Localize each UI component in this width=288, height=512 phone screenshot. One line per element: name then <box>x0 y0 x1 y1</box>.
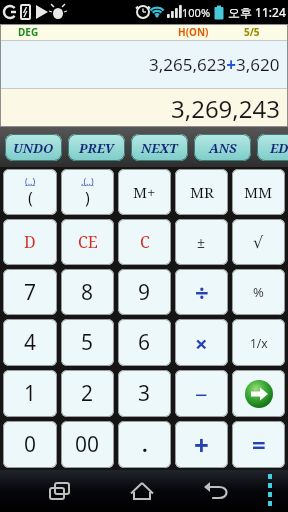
staticText: − <box>195 379 208 409</box>
staticText: + <box>194 427 209 462</box>
button[interactable]: M+ <box>118 169 171 215</box>
staticText: ( <box>28 187 33 209</box>
staticText: 3,265,623+3,620 <box>149 53 280 76</box>
button[interactable]: 0 <box>3 421 57 468</box>
staticText: (..) <box>25 175 36 187</box>
button[interactable]: = <box>232 421 285 468</box>
staticText: 00 <box>75 430 100 459</box>
staticText: 2 <box>81 379 94 408</box>
button[interactable]: 00 <box>61 421 114 468</box>
staticText: 3 <box>138 379 151 408</box>
staticText: 1/x <box>250 335 268 351</box>
staticText: % <box>253 283 264 301</box>
staticText: PREV <box>79 139 114 157</box>
staticText: M+ <box>133 182 156 202</box>
button[interactable]: 8 <box>61 269 114 315</box>
button[interactable]: 3 <box>118 370 171 417</box>
staticText: H(ON) <box>178 25 209 39</box>
button[interactable]: √ <box>232 219 285 265</box>
staticText: MM <box>244 182 273 202</box>
button[interactable]: ANS <box>194 134 251 161</box>
button[interactable] <box>0 470 288 512</box>
staticText: × <box>195 328 208 358</box>
button[interactable]: MM <box>232 169 285 215</box>
button[interactable]: MR <box>175 169 228 215</box>
button[interactable] <box>232 370 285 417</box>
staticText: C <box>140 231 150 253</box>
staticText: 5/5 <box>244 25 260 39</box>
button[interactable]: (..) <box>3 169 57 215</box>
staticText: NEXT <box>141 139 178 157</box>
button[interactable]: 9 <box>118 269 171 315</box>
staticText: 7 <box>24 278 37 307</box>
button[interactable]: 5 <box>61 319 114 366</box>
button[interactable]: D <box>3 219 57 265</box>
staticText: √ <box>253 233 264 252</box>
staticText: ± <box>197 233 206 252</box>
staticText: = <box>252 428 266 461</box>
button[interactable]: − <box>175 370 228 417</box>
staticText: DEG <box>18 25 39 39</box>
button[interactable]: UNDO <box>5 134 62 161</box>
staticText: ANS <box>209 139 237 157</box>
staticText: . <box>142 431 148 458</box>
staticText: 4 <box>24 328 37 357</box>
staticText: UNDO <box>13 139 54 157</box>
button[interactable]: NEXT <box>131 134 188 161</box>
staticText: 1 <box>24 379 37 408</box>
button[interactable]: . <box>118 421 171 468</box>
staticText: 8 <box>81 278 94 307</box>
staticText: D <box>24 231 36 253</box>
button[interactable]: C <box>118 219 171 265</box>
staticText: MR <box>190 182 214 202</box>
button[interactable]: EDIT <box>257 134 288 161</box>
staticText: CE <box>78 231 98 253</box>
staticText: ÷ <box>195 276 209 309</box>
button[interactable]: 2 <box>61 370 114 417</box>
button[interactable]: 1/x <box>232 319 285 366</box>
staticText: 6 <box>138 328 151 357</box>
staticText: 0 <box>24 430 37 459</box>
staticText: ) <box>85 187 90 209</box>
staticText: 오후 11:24 <box>228 4 286 20</box>
staticText: EDIT <box>270 139 288 157</box>
button[interactable]: % <box>232 269 285 315</box>
button[interactable]: × <box>175 319 228 366</box>
button[interactable]: 4 <box>3 319 57 366</box>
button[interactable]: 1 <box>3 370 57 417</box>
button[interactable]: ± <box>175 219 228 265</box>
button[interactable]: PREV <box>68 134 125 161</box>
button[interactable]: ÷ <box>175 269 228 315</box>
button[interactable]: + <box>175 421 228 468</box>
button[interactable]: 6 <box>118 319 171 366</box>
button[interactable]: .(..) <box>61 169 114 215</box>
staticText: 3,269,243 <box>171 92 280 125</box>
staticText: 100% <box>182 5 211 20</box>
staticText: 9 <box>138 278 151 307</box>
staticText: .(..) <box>81 175 94 187</box>
button[interactable]: 7 <box>3 269 57 315</box>
staticText: 5 <box>81 328 94 357</box>
button[interactable]: CE <box>61 219 114 265</box>
